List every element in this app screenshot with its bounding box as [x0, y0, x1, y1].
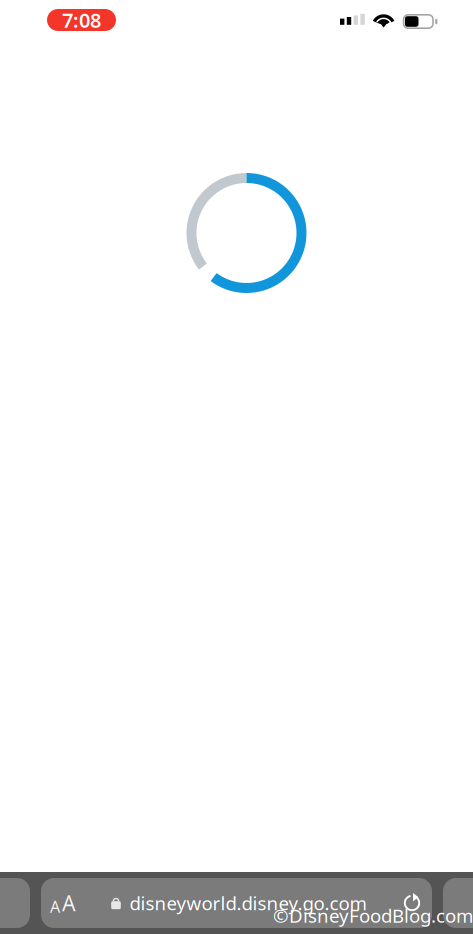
staticText: A: [62, 889, 76, 917]
button[interactable]: Reload: [392, 878, 432, 928]
button[interactable]: Previous tab: [0, 878, 30, 928]
staticText: disneyworld.disney.go.com: [129, 891, 366, 915]
button[interactable]: Next tab: [443, 878, 473, 928]
button[interactable]: Page settings: [41, 878, 85, 928]
staticText: ©DisneyFoodBlog.com: [273, 903, 473, 928]
staticText: 7:08: [62, 7, 101, 33]
button[interactable]: disneyworld.disney.go.com: [41, 878, 432, 928]
staticText: A: [50, 896, 60, 917]
